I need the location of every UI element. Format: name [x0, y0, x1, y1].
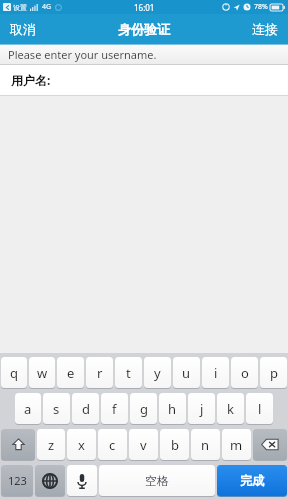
- staticText: 取消: [10, 21, 36, 37]
- staticText: j: [200, 400, 204, 418]
- button[interactable]: y: [144, 357, 171, 389]
- staticText: p: [270, 364, 278, 382]
- staticText: f: [112, 400, 117, 418]
- staticText: y: [154, 364, 161, 382]
- staticText: z: [48, 436, 55, 454]
- staticText: 78%: [254, 2, 268, 12]
- button[interactable]: Shift: [1, 429, 35, 461]
- staticText: h: [168, 400, 177, 418]
- staticText: i: [214, 364, 218, 382]
- staticText: a: [24, 400, 32, 418]
- staticText: s: [53, 400, 60, 418]
- staticText: 123: [8, 473, 27, 488]
- button[interactable]: 空格: [99, 465, 215, 497]
- button[interactable]: d: [72, 393, 99, 425]
- staticText: 连接: [252, 21, 278, 37]
- button[interactable]: i: [202, 357, 229, 389]
- staticText: o: [241, 364, 249, 382]
- button[interactable]: b: [160, 429, 189, 461]
- staticText: x: [78, 436, 85, 454]
- staticText: m: [230, 436, 243, 454]
- staticText: t: [126, 364, 131, 382]
- staticText: e: [67, 364, 75, 382]
- button[interactable]: Backspace: [253, 429, 287, 461]
- staticText: r: [97, 364, 103, 382]
- button[interactable]: 用户名:: [0, 65, 288, 95]
- button[interactable]: j: [188, 393, 215, 425]
- button[interactable]: s: [43, 393, 70, 425]
- staticText: 完成: [240, 473, 264, 488]
- button[interactable]: Voice input: [67, 465, 97, 497]
- button[interactable]: Switch language: [35, 465, 65, 497]
- staticText: 4G: [42, 2, 52, 12]
- staticText: 空格: [145, 473, 169, 488]
- button[interactable]: f: [101, 393, 128, 425]
- staticText: 身份验证: [118, 21, 170, 37]
- staticText: 16:01: [134, 2, 155, 13]
- button[interactable]: k: [217, 393, 244, 425]
- button[interactable]: v: [129, 429, 158, 461]
- button[interactable]: u: [173, 357, 200, 389]
- button[interactable]: 完成: [217, 465, 287, 497]
- button[interactable]: r: [86, 357, 113, 389]
- button[interactable]: q: [1, 357, 27, 389]
- button[interactable]: t: [115, 357, 142, 389]
- button[interactable]: 123: [1, 465, 33, 497]
- button[interactable]: n: [191, 429, 220, 461]
- button[interactable]: o: [231, 357, 258, 389]
- button[interactable]: c: [98, 429, 127, 461]
- staticText: Please enter your username.: [8, 47, 157, 62]
- staticText: 用户名:: [11, 72, 51, 88]
- staticText: q: [10, 364, 18, 382]
- staticText: b: [171, 436, 179, 454]
- button[interactable]: m: [222, 429, 251, 461]
- button[interactable]: p: [260, 357, 287, 389]
- staticText: n: [201, 436, 210, 454]
- staticText: v: [140, 436, 147, 454]
- button[interactable]: l: [246, 393, 273, 425]
- button[interactable]: a: [15, 393, 41, 425]
- staticText: l: [258, 400, 262, 418]
- button[interactable]: 连接: [242, 14, 288, 44]
- button[interactable]: h: [159, 393, 186, 425]
- staticText: w: [37, 364, 48, 382]
- staticText: g: [140, 400, 148, 418]
- button[interactable]: x: [67, 429, 96, 461]
- staticText: k: [227, 400, 234, 418]
- button[interactable]: w: [29, 357, 55, 389]
- staticText: c: [109, 436, 116, 454]
- button[interactable]: z: [37, 429, 65, 461]
- button[interactable]: 取消: [0, 14, 46, 44]
- staticText: 设置: [13, 3, 27, 12]
- staticText: u: [182, 364, 191, 382]
- button[interactable]: e: [57, 357, 84, 389]
- button[interactable]: g: [130, 393, 157, 425]
- staticText: d: [82, 400, 90, 418]
